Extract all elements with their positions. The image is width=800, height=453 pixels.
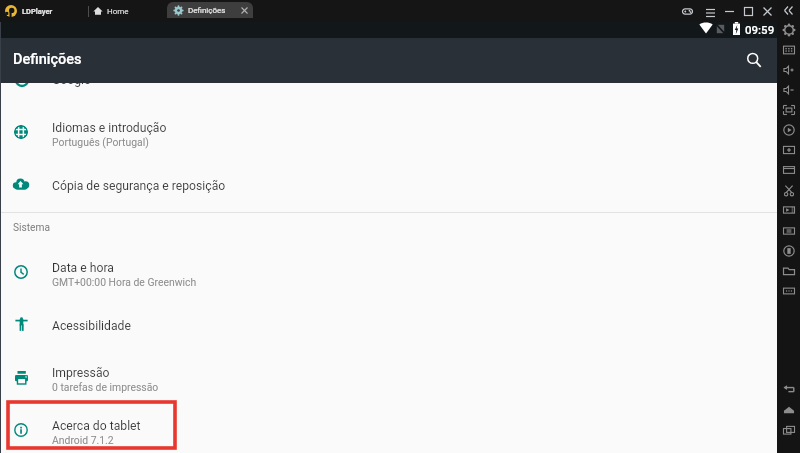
staticText: Google	[52, 73, 91, 87]
button[interactable]: Install APK	[777, 160, 800, 180]
staticText: Definições	[188, 6, 226, 15]
button[interactable]: Fullscreen	[777, 100, 800, 120]
button[interactable]: Acessibilidade	[0, 300, 777, 352]
button[interactable]: Home	[93, 0, 129, 22]
staticText: Sistema	[13, 222, 50, 234]
button[interactable]: Impressão	[0, 353, 777, 405]
button[interactable]: Keyboard	[777, 40, 800, 60]
button[interactable]: Idiomas e introdução	[0, 108, 777, 160]
button[interactable]: Shake	[777, 241, 800, 261]
button[interactable]: Data e hora	[0, 248, 777, 300]
button[interactable]: More	[777, 281, 800, 301]
button[interactable]: Collapse sidebar	[777, 0, 800, 20]
button[interactable]: Volume up	[777, 60, 800, 80]
button[interactable]: Definições	[167, 2, 253, 18]
button[interactable]: Google	[0, 54, 777, 106]
button[interactable]: Maximize	[739, 0, 757, 22]
button[interactable]: LDPlayer	[5, 0, 53, 22]
button[interactable]: Cópia de segurança e reposição	[0, 160, 777, 212]
staticText: Definições	[13, 51, 82, 68]
staticText: Cópia de segurança e reposição	[52, 179, 226, 193]
staticText: LDPlayer	[22, 7, 53, 16]
button[interactable]: Close	[758, 0, 776, 22]
staticText: 09:59	[745, 23, 775, 36]
staticText: Idiomas e introdução	[52, 121, 167, 135]
staticText: Android 7.1.2	[52, 434, 114, 446]
button[interactable]: Menu	[701, 0, 719, 22]
button[interactable]: Settings	[777, 20, 800, 40]
button[interactable]: Rotate	[777, 120, 800, 140]
button[interactable]: Video	[777, 200, 800, 220]
staticText: Acessibilidade	[52, 319, 131, 333]
staticText: Acerca do tablet	[52, 419, 141, 433]
button[interactable]: Minimize	[720, 0, 738, 22]
staticText: Data e hora	[52, 261, 114, 275]
button[interactable]: Home	[777, 400, 800, 420]
button[interactable]: Search	[740, 46, 768, 74]
staticText: Português (Portugal)	[52, 136, 149, 148]
button[interactable]: Back	[777, 379, 800, 399]
button[interactable]: Recents	[777, 420, 800, 440]
staticText: 0 tarefas de impressão	[52, 381, 159, 393]
button[interactable]: Close tab	[241, 7, 248, 14]
button[interactable]: Cut	[777, 180, 800, 200]
button[interactable]: Share	[777, 221, 800, 241]
button[interactable]: Gamepad	[678, 0, 696, 22]
staticText: GMT+00:00 Hora de Greenwich	[52, 276, 197, 288]
staticText: Home	[107, 7, 129, 16]
button[interactable]: Acerca do tablet	[0, 406, 777, 453]
button[interactable]: Folder	[777, 261, 800, 281]
button[interactable]: Volume down	[777, 80, 800, 100]
button[interactable]: Screenshot	[777, 140, 800, 160]
staticText: Impressão	[52, 366, 110, 380]
